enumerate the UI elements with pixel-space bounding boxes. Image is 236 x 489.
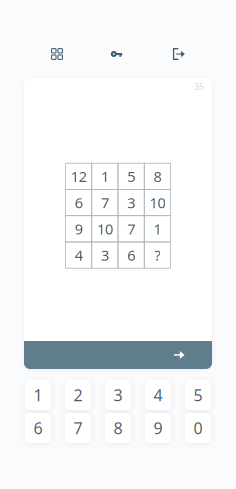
button[interactable]: Log out [164,41,194,67]
staticText: 6 [33,417,42,439]
staticText: 7 [101,193,109,212]
staticText: ? [154,245,160,265]
staticText: 10 [149,193,165,212]
staticText: 7 [127,219,135,239]
button[interactable]: 1 [25,380,51,410]
button[interactable]: 4 [145,380,171,410]
staticText: 6 [127,245,135,265]
staticText: 3 [113,384,122,406]
button[interactable]: Levels [42,41,72,67]
staticText: 8 [153,167,161,186]
staticText: 5 [193,384,202,406]
button[interactable] [24,341,212,369]
staticText: 8 [113,417,122,439]
staticText: 9 [153,417,162,439]
button[interactable]: 6 [25,413,51,443]
button[interactable]: 5 [185,380,211,410]
button[interactable]: 3 [105,380,131,410]
staticText: 2 [73,384,82,406]
staticText: 9 [75,219,83,239]
staticText: 7 [73,417,82,439]
button[interactable]: 0 [185,413,211,443]
staticText: 5 [127,167,135,186]
staticText: 1 [101,167,109,186]
staticText: 0 [193,417,202,439]
staticText: 3 [101,245,109,265]
staticText: 1 [33,384,42,406]
button[interactable]: 9 [145,413,171,443]
staticText: 3 [127,193,135,212]
staticText: 4 [153,384,162,406]
staticText: 6 [75,193,83,212]
staticText: 4 [75,245,83,265]
staticText: 10 [97,219,113,239]
staticText: 35 [194,80,204,92]
staticText: 1 [153,219,161,239]
button[interactable]: 8 [105,413,131,443]
staticText: 12 [71,167,87,186]
button[interactable]: 7 [65,413,91,443]
button[interactable]: 2 [65,380,91,410]
button[interactable]: Hints [101,41,131,67]
